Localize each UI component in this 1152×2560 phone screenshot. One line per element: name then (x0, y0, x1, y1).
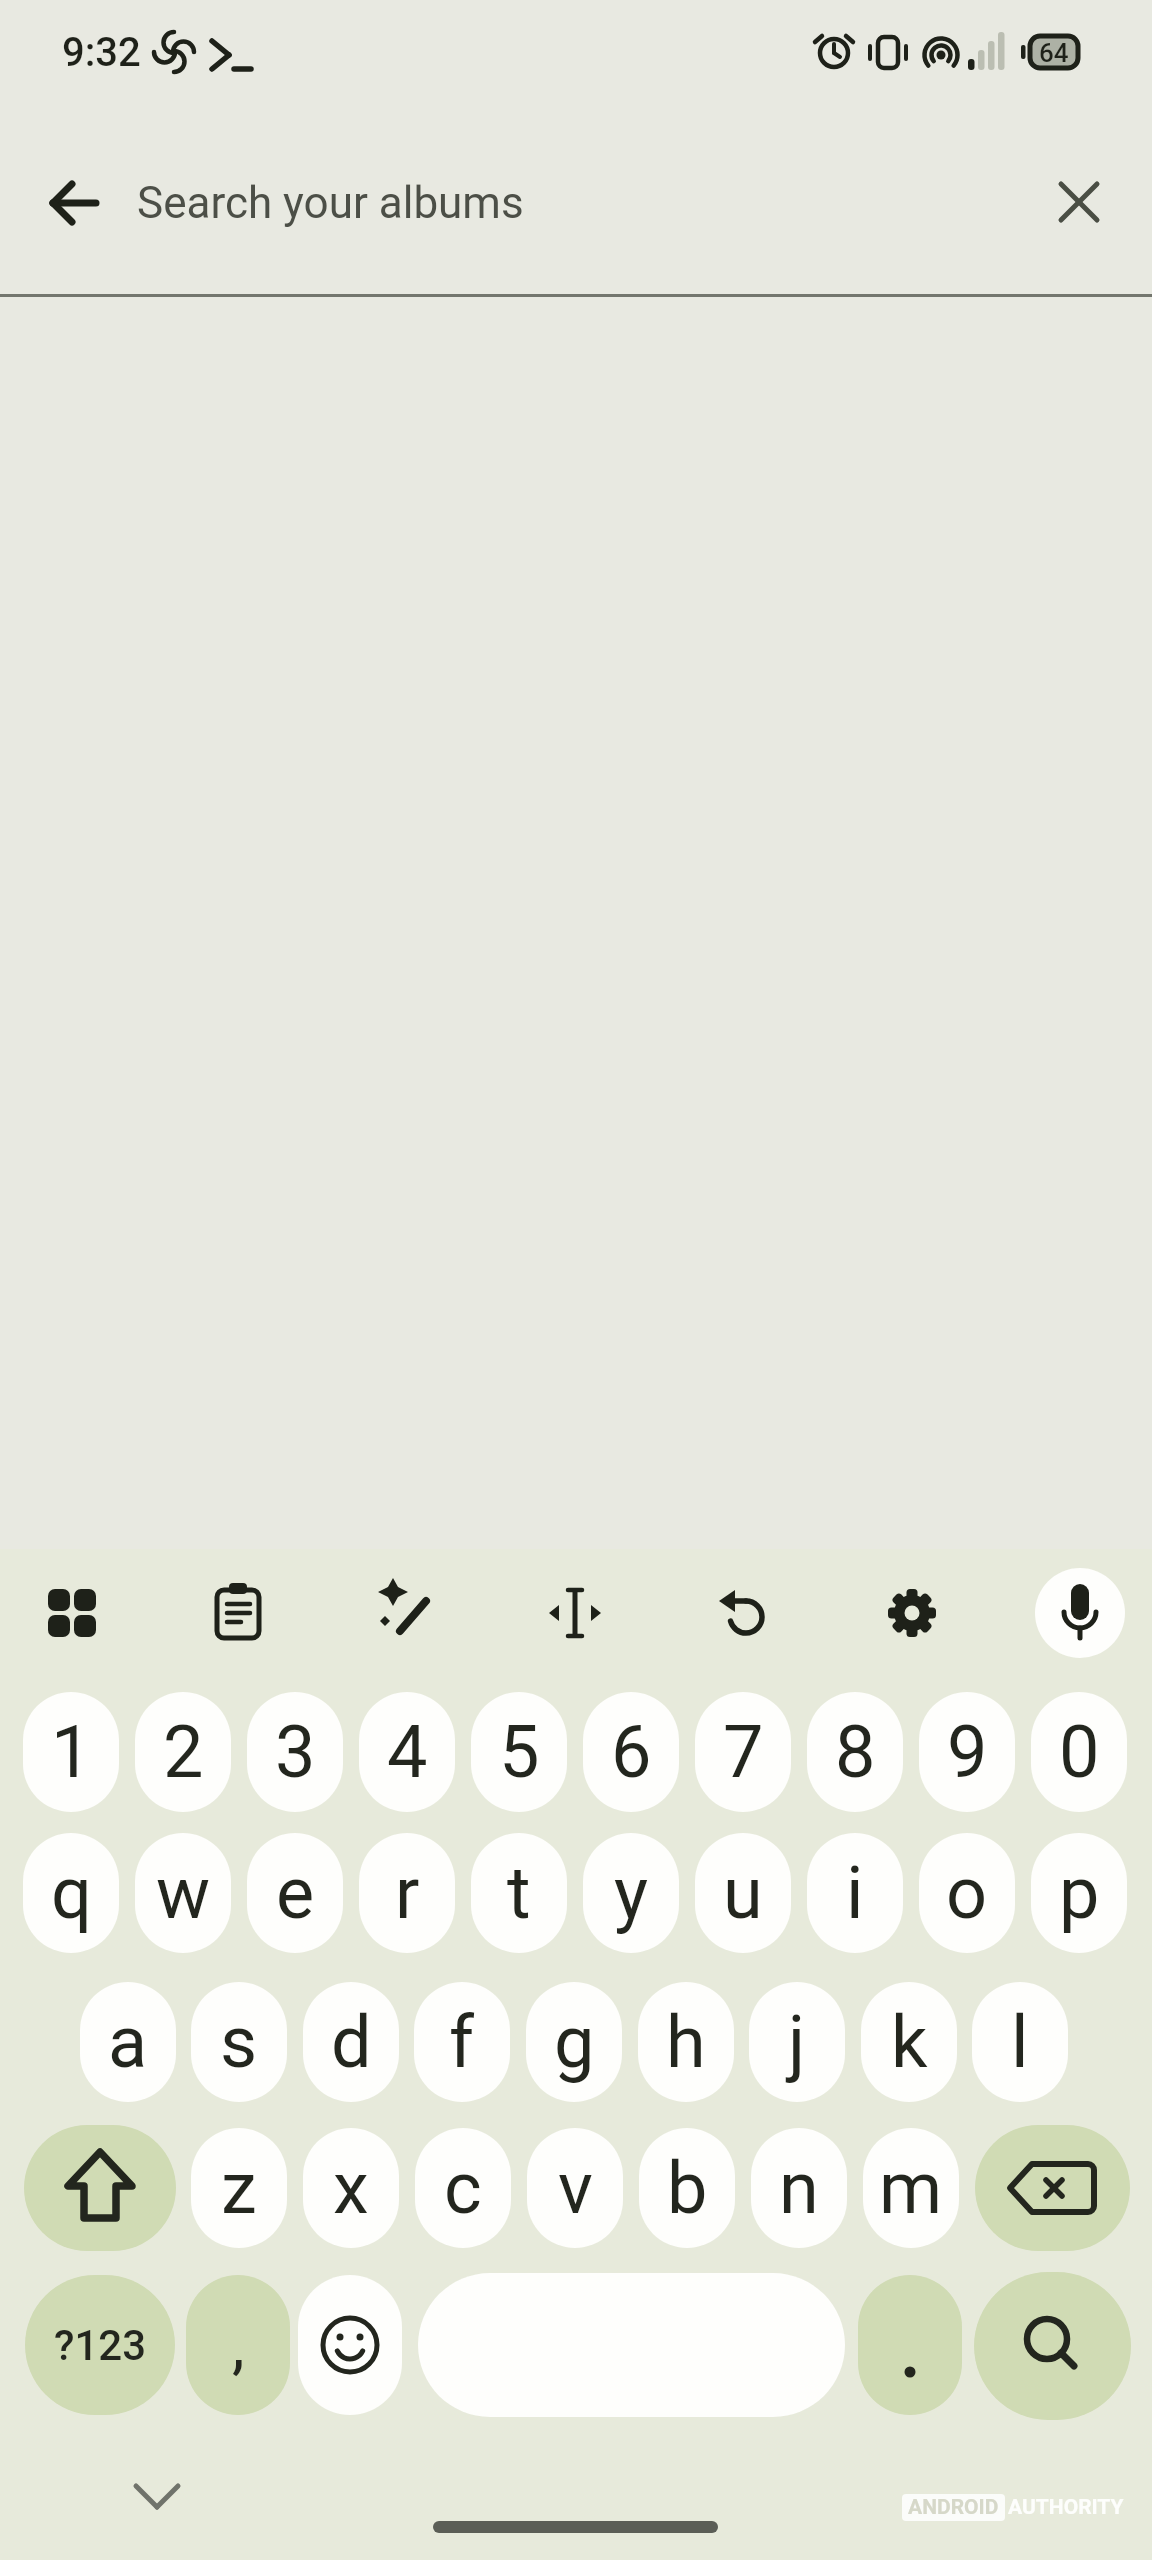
staticText: 1 (51, 1710, 92, 1794)
staticText: 9 (947, 1710, 988, 1794)
button[interactable]: b (639, 2128, 735, 2248)
button[interactable]: h (638, 1982, 734, 2102)
staticText: v (558, 2146, 593, 2230)
button[interactable]: 3 (247, 1692, 343, 1812)
button[interactable]: i (807, 1833, 903, 1953)
staticText: Search your albums (137, 177, 524, 229)
staticText: k (891, 2000, 928, 2084)
button[interactable]: t (471, 1833, 567, 1953)
button[interactable]: a (80, 1982, 176, 2102)
button[interactable] (206, 1581, 270, 1645)
button[interactable]: 1 (23, 1692, 119, 1812)
button[interactable]: 2 (135, 1692, 231, 1812)
button[interactable]: x (303, 2128, 399, 2248)
button[interactable] (40, 1581, 104, 1645)
button[interactable]: p (1031, 1833, 1127, 1953)
staticText: AUTHORITY (1008, 2495, 1124, 2520)
button[interactable]: 0 (1031, 1692, 1127, 1812)
button[interactable] (712, 1581, 776, 1645)
staticText: q (51, 1851, 92, 1935)
staticText: ?123 (54, 2321, 147, 2370)
button[interactable]: w (135, 1833, 231, 1953)
staticText: c (444, 2146, 482, 2230)
button[interactable]: o (919, 1833, 1015, 1953)
button[interactable] (186, 2275, 290, 2415)
button[interactable]: 9 (919, 1692, 1015, 1812)
button[interactable]: l (972, 1982, 1068, 2102)
staticText: 4 (387, 1710, 428, 1794)
button[interactable] (418, 2273, 845, 2417)
button[interactable]: j (749, 1982, 845, 2102)
button[interactable] (1044, 167, 1116, 239)
staticText: h (666, 2000, 706, 2084)
button[interactable]: 4 (359, 1692, 455, 1812)
button[interactable]: e (247, 1833, 343, 1953)
button[interactable]: 7 (695, 1692, 791, 1812)
button[interactable]: n (751, 2128, 847, 2248)
staticText: u (723, 1851, 763, 1935)
button[interactable] (880, 1581, 944, 1645)
button[interactable] (40, 168, 110, 238)
button[interactable]: g (526, 1982, 622, 2102)
staticText: 3 (275, 1710, 316, 1794)
button[interactable]: 8 (807, 1692, 903, 1812)
staticText: ANDROID (908, 2495, 999, 2520)
staticText: o (946, 1851, 988, 1935)
staticText: 7 (723, 1710, 764, 1794)
staticText: 5 (499, 1710, 540, 1794)
button[interactable]: c (415, 2128, 511, 2248)
button[interactable] (974, 2272, 1131, 2420)
button[interactable]: d (303, 1982, 399, 2102)
button[interactable] (1035, 1568, 1125, 1658)
button[interactable]: s (191, 1982, 287, 2102)
button[interactable]: 6 (583, 1692, 679, 1812)
button[interactable] (298, 2275, 402, 2415)
staticText: w (156, 1851, 211, 1935)
staticText: 9:32 (62, 29, 141, 76)
staticText: , (232, 2308, 245, 2383)
staticText: p (1059, 1851, 1100, 1935)
button[interactable]: ?123 (25, 2275, 175, 2415)
staticText: d (331, 2000, 372, 2084)
button[interactable]: v (527, 2128, 623, 2248)
staticText: 6 (611, 1710, 652, 1794)
button[interactable]: r (359, 1833, 455, 1953)
staticText: a (108, 2000, 148, 2084)
button[interactable]: q (23, 1833, 119, 1953)
button[interactable] (24, 2125, 176, 2251)
staticText: e (276, 1851, 315, 1935)
staticText: l (1011, 2000, 1029, 2084)
staticText: z (221, 2146, 257, 2230)
staticText: y (614, 1851, 649, 1935)
button[interactable]: 5 (471, 1692, 567, 1812)
staticText: m (879, 2146, 943, 2230)
staticText: s (220, 2000, 258, 2084)
button[interactable]: f (414, 1982, 510, 2102)
staticText: r (395, 1851, 420, 1935)
staticText: 8 (835, 1710, 876, 1794)
staticText: 64 (1039, 38, 1069, 66)
button[interactable]: u (695, 1833, 791, 1953)
staticText: i (846, 1851, 864, 1935)
staticText: t (507, 1851, 531, 1935)
button[interactable]: y (583, 1833, 679, 1953)
staticText: 2 (163, 1710, 204, 1794)
staticText: x (333, 2146, 369, 2230)
staticText: n (779, 2146, 819, 2230)
staticText: j (788, 2000, 806, 2084)
button[interactable]: z (191, 2128, 287, 2248)
staticText: b (667, 2146, 708, 2230)
button[interactable]: k (861, 1982, 957, 2102)
staticText: g (554, 2000, 595, 2084)
button[interactable] (858, 2275, 962, 2415)
staticText: 0 (1059, 1710, 1100, 1794)
button[interactable] (543, 1581, 607, 1645)
button[interactable]: m (863, 2128, 959, 2248)
staticText: f (449, 2000, 475, 2084)
button[interactable] (373, 1581, 437, 1645)
button[interactable] (975, 2125, 1130, 2251)
